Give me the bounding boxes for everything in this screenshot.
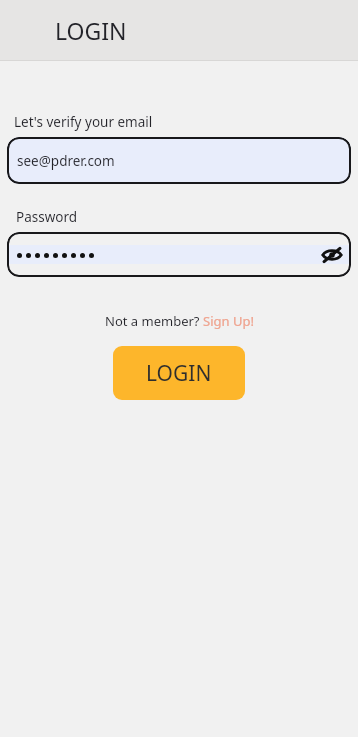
button[interactable]: Sign Up!: [203, 312, 254, 330]
button[interactable]: Toggle password visibility: [315, 238, 349, 272]
staticText: see@pdrer.com: [17, 152, 115, 170]
staticText: Password: [16, 208, 78, 226]
staticText: Not a member?: [105, 312, 203, 330]
staticText: LOGIN: [55, 15, 127, 46]
button[interactable]: see@pdrer.com: [7, 137, 351, 184]
staticText: Let's verify your email: [14, 113, 153, 131]
staticText: Sign Up!: [203, 312, 254, 330]
button[interactable]: LOGIN: [113, 346, 245, 400]
button[interactable]: Toggle password visibility: [7, 232, 351, 277]
staticText: LOGIN: [146, 359, 212, 388]
